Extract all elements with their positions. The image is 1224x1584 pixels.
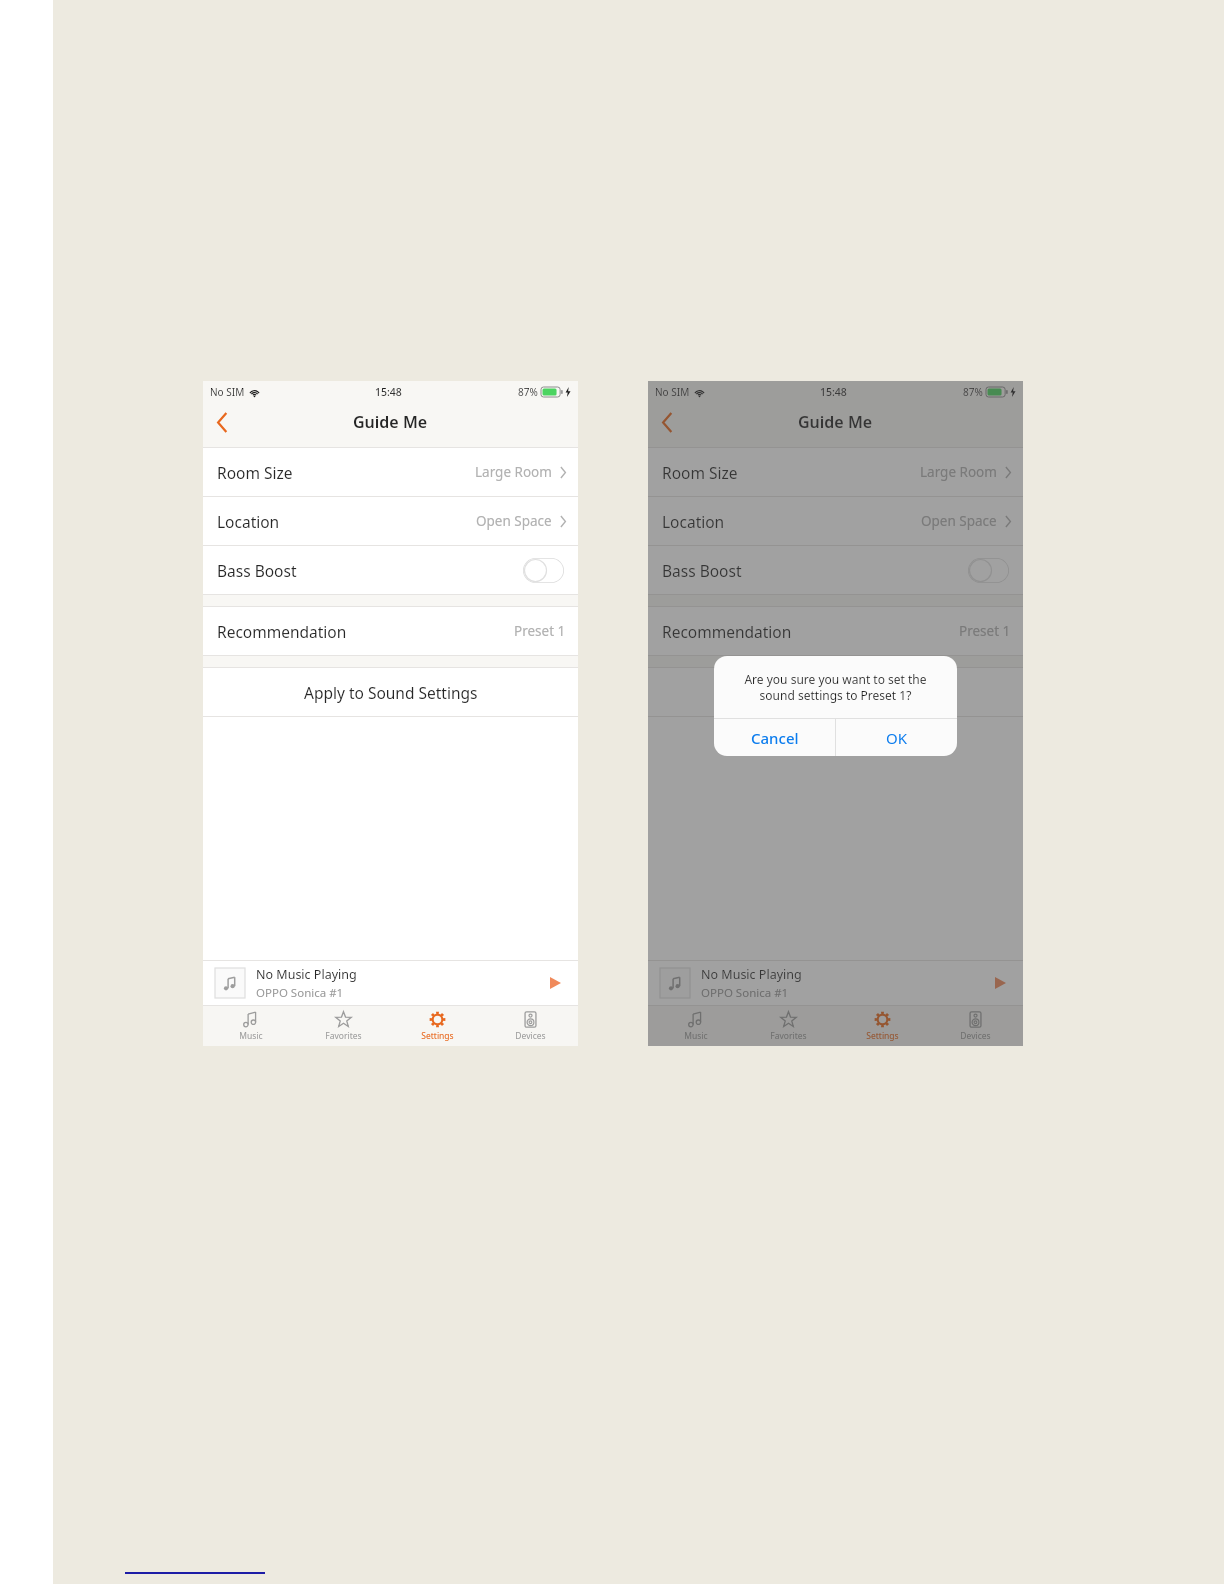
staticText: Music bbox=[684, 1030, 708, 1042]
staticText: Are you sure you want to set the sound s… bbox=[730, 671, 941, 703]
button[interactable]: Location bbox=[648, 497, 1023, 545]
button[interactable]: Favorites bbox=[297, 1006, 390, 1046]
button[interactable]: Room Size bbox=[203, 448, 578, 496]
staticText: Location bbox=[217, 511, 280, 532]
button[interactable]: Recommendation bbox=[648, 607, 1023, 655]
staticText: Apply to Sound Settings bbox=[749, 682, 923, 703]
button[interactable]: Bass Boost bbox=[203, 546, 578, 594]
button[interactable]: Play bbox=[989, 972, 1011, 994]
button[interactable]: OK bbox=[836, 719, 957, 756]
staticText: Large Room bbox=[475, 463, 552, 481]
button[interactable]: Apply to Sound Settings bbox=[203, 668, 578, 716]
button[interactable]: Music bbox=[649, 1006, 742, 1046]
button[interactable]: Play bbox=[544, 972, 566, 994]
button[interactable]: Recommendation bbox=[203, 607, 578, 655]
staticText: Guide Me bbox=[798, 411, 873, 433]
button[interactable]: Apply to Sound Settings bbox=[648, 668, 1023, 716]
staticText: Room Size bbox=[662, 462, 738, 483]
button[interactable]: Back bbox=[648, 403, 686, 441]
staticText: Devices bbox=[960, 1030, 991, 1042]
button[interactable]: Devices bbox=[929, 1006, 1022, 1046]
button[interactable]: Favorites bbox=[742, 1006, 835, 1046]
staticText: Favorites bbox=[325, 1030, 362, 1042]
button[interactable]: Settings bbox=[836, 1006, 929, 1046]
staticText: Settings bbox=[866, 1030, 899, 1042]
staticText: Guide Me bbox=[353, 411, 428, 433]
staticText: Open Space bbox=[921, 512, 997, 530]
staticText: Open Space bbox=[476, 512, 552, 530]
staticText: 15:48 bbox=[820, 385, 847, 399]
button[interactable]: Location bbox=[203, 497, 578, 545]
button[interactable]: No Music Playing bbox=[203, 961, 578, 1005]
button[interactable]: Bass Boost bbox=[648, 546, 1023, 594]
button[interactable]: Music bbox=[204, 1006, 297, 1046]
button[interactable]: Settings bbox=[391, 1006, 484, 1046]
staticText: OPPO Sonica #1 bbox=[701, 985, 789, 1001]
staticText: No Music Playing bbox=[701, 966, 802, 983]
staticText: Preset 1 bbox=[514, 622, 566, 640]
staticText: Devices bbox=[515, 1030, 546, 1042]
staticText: Apply to Sound Settings bbox=[304, 682, 478, 703]
staticText: Location bbox=[662, 511, 725, 532]
staticText: No SIM bbox=[210, 385, 245, 399]
staticText: Recommendation bbox=[662, 621, 792, 642]
button[interactable]: Back bbox=[203, 403, 241, 441]
button[interactable]: Room Size bbox=[648, 448, 1023, 496]
staticText: OK bbox=[886, 728, 908, 748]
staticText: Settings bbox=[421, 1030, 454, 1042]
staticText: 87% bbox=[518, 385, 538, 399]
staticText: Bass Boost bbox=[662, 560, 742, 581]
staticText: OPPO Sonica #1 bbox=[256, 985, 344, 1001]
button[interactable]: No Music Playing bbox=[648, 961, 1023, 1005]
staticText: Large Room bbox=[920, 463, 997, 481]
staticText: 15:48 bbox=[375, 385, 402, 399]
staticText: 87% bbox=[963, 385, 983, 399]
button[interactable]: Devices bbox=[484, 1006, 577, 1046]
staticText: Recommendation bbox=[217, 621, 347, 642]
staticText: Preset 1 bbox=[959, 622, 1011, 640]
staticText: No Music Playing bbox=[256, 966, 357, 983]
staticText: No SIM bbox=[655, 385, 690, 399]
staticText: Room Size bbox=[217, 462, 293, 483]
button[interactable]: Cancel bbox=[714, 719, 835, 756]
staticText: Cancel bbox=[751, 728, 799, 748]
staticText: Bass Boost bbox=[217, 560, 297, 581]
staticText: Favorites bbox=[770, 1030, 807, 1042]
staticText: Music bbox=[239, 1030, 263, 1042]
